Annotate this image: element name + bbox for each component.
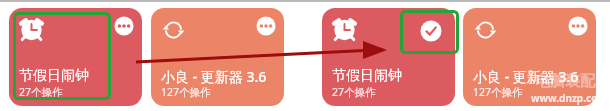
staticText: 27个操作 [19,85,63,99]
staticText: 节假日闹钟 [332,67,402,85]
button[interactable]: 小良 - 更新器 3.6 [151,8,284,106]
staticText: 节假日闹钟 [19,67,89,85]
staticText: 电脑装配网 [535,72,610,91]
button[interactable]: 节假日闹钟 [322,8,455,106]
staticText: 127个操作 [473,85,523,99]
staticText: 27个操作 [332,85,376,99]
button[interactable]: 小良 - 更新器 3.6 [463,8,596,106]
staticText: www.dnzp.com [531,91,608,105]
staticText: 小良 - 更新器 3.6 [161,67,267,86]
staticText: 127个操作 [161,85,211,99]
staticText: 小良 - 更新器 3.6 [473,67,579,86]
button[interactable]: 节假日闹钟 [9,8,142,106]
